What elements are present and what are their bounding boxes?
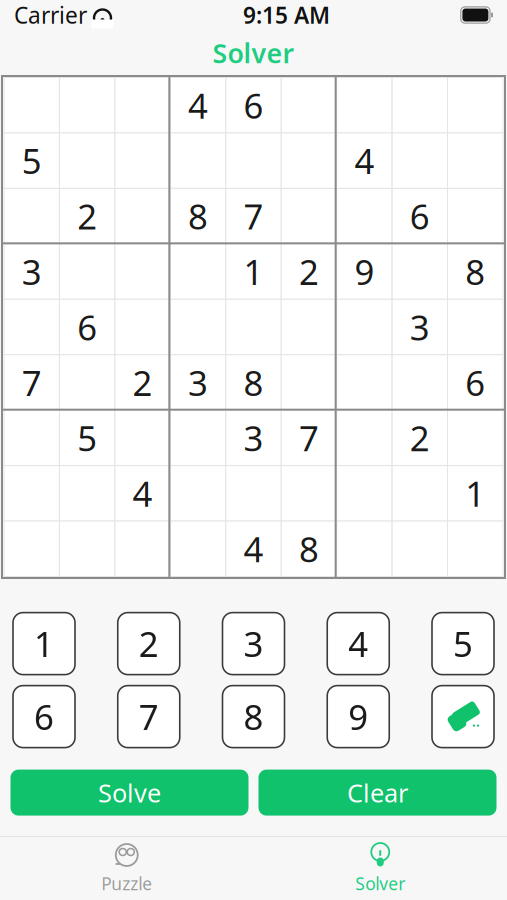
button[interactable]: Empty cell row 7 column 9 xyxy=(448,410,503,466)
button[interactable]: Empty cell row 2 column 3 xyxy=(115,133,170,188)
button[interactable]: Cell row 4 column 5, value 1 xyxy=(226,244,281,299)
button[interactable]: Empty cell row 1 column 6 xyxy=(281,77,337,133)
button[interactable]: Cell row 6 column 1, value 7 xyxy=(4,355,59,410)
button[interactable]: Empty cell row 8 column 2 xyxy=(59,466,115,521)
button[interactable]: Empty cell row 2 column 4 xyxy=(170,133,226,188)
button[interactable]: Empty cell row 8 column 4 xyxy=(170,466,226,521)
button[interactable]: Cell row 4 column 6, value 2 xyxy=(281,244,337,299)
button[interactable]: 5 xyxy=(432,613,494,675)
staticText: 3 xyxy=(410,304,430,350)
button[interactable]: Empty cell row 4 column 8 xyxy=(392,244,447,299)
button[interactable]: Empty cell row 9 column 8 xyxy=(392,521,447,576)
button[interactable]: Empty cell row 7 column 7 xyxy=(337,410,392,466)
button[interactable]: Solver xyxy=(253,837,507,900)
button[interactable]: Cell row 6 column 9, value 6 xyxy=(448,355,503,410)
button[interactable]: Cell row 7 column 6, value 7 xyxy=(281,410,337,466)
button[interactable]: 4 xyxy=(327,613,389,675)
button[interactable]: Cell row 8 column 9, value 1 xyxy=(448,466,503,521)
button[interactable]: Cell row 8 column 3, value 4 xyxy=(115,466,170,521)
button[interactable]: Empty cell row 5 column 7 xyxy=(337,299,392,355)
staticText: 4 xyxy=(348,621,368,667)
button[interactable]: Cell row 1 column 5, value 6 xyxy=(226,77,281,133)
button[interactable]: Cell row 3 column 4, value 8 xyxy=(170,188,226,244)
button[interactable]: Cell row 6 column 5, value 8 xyxy=(226,355,281,410)
button[interactable]: Cell row 6 column 3, value 2 xyxy=(115,355,170,410)
button[interactable]: Cell row 9 column 5, value 4 xyxy=(226,521,281,576)
button[interactable]: Solve xyxy=(10,770,248,816)
button[interactable]: Cell row 3 column 5, value 7 xyxy=(226,188,281,244)
button[interactable]: Cell row 4 column 7, value 9 xyxy=(337,244,392,299)
button[interactable]: Empty cell row 5 column 1 xyxy=(4,299,59,355)
button[interactable]: Empty cell row 3 column 7 xyxy=(337,188,392,244)
button[interactable]: Empty cell row 5 column 6 xyxy=(281,299,337,355)
button[interactable]: Cell row 3 column 2, value 2 xyxy=(59,188,115,244)
button[interactable]: Cell row 7 column 2, value 5 xyxy=(59,410,115,466)
button[interactable]: Empty cell row 8 column 5 xyxy=(226,466,281,521)
button[interactable]: Empty cell row 1 column 7 xyxy=(337,77,392,133)
button[interactable]: Empty cell row 2 column 8 xyxy=(392,133,447,188)
button[interactable]: 6 xyxy=(13,686,75,748)
button[interactable]: Empty cell row 6 column 7 xyxy=(337,355,392,410)
button[interactable]: Empty cell row 6 column 2 xyxy=(59,355,115,410)
button[interactable]: Empty cell row 2 column 2 xyxy=(59,133,115,188)
button[interactable]: 8 xyxy=(222,686,284,748)
button[interactable]: Empty cell row 5 column 3 xyxy=(115,299,170,355)
button[interactable]: 9 xyxy=(327,686,389,748)
button[interactable]: Empty cell row 9 column 7 xyxy=(337,521,392,576)
button[interactable]: 7 xyxy=(118,686,180,748)
button[interactable]: Empty cell row 3 column 1 xyxy=(4,188,59,244)
button[interactable]: Empty cell row 7 column 1 xyxy=(4,410,59,466)
button[interactable]: Empty cell row 1 column 9 xyxy=(448,77,503,133)
button[interactable]: Empty cell row 5 column 9 xyxy=(448,299,503,355)
button[interactable]: Empty cell row 6 column 8 xyxy=(392,355,447,410)
button[interactable]: Empty cell row 1 column 8 xyxy=(392,77,447,133)
button[interactable]: Cell row 9 column 6, value 8 xyxy=(281,521,337,576)
button[interactable]: Cell row 2 column 1, value 5 xyxy=(4,133,59,188)
button[interactable]: Empty cell row 8 column 8 xyxy=(392,466,447,521)
button[interactable]: Erase xyxy=(432,686,494,748)
button[interactable]: Empty cell row 4 column 3 xyxy=(115,244,170,299)
button[interactable]: Cell row 1 column 4, value 4 xyxy=(170,77,226,133)
button[interactable]: Empty cell row 1 column 3 xyxy=(115,77,170,133)
button[interactable]: Cell row 3 column 8, value 6 xyxy=(392,188,447,244)
button[interactable]: Empty cell row 9 column 2 xyxy=(59,521,115,576)
button[interactable]: Cell row 5 column 8, value 3 xyxy=(392,299,447,355)
button[interactable]: Cell row 4 column 1, value 3 xyxy=(4,244,59,299)
button[interactable]: Puzzle xyxy=(0,837,253,900)
button[interactable]: Empty cell row 3 column 6 xyxy=(281,188,337,244)
button[interactable]: Empty cell row 1 column 2 xyxy=(59,77,115,133)
button[interactable]: Empty cell row 7 column 4 xyxy=(170,410,226,466)
button[interactable]: Empty cell row 2 column 6 xyxy=(281,133,337,188)
button[interactable]: Cell row 5 column 2, value 6 xyxy=(59,299,115,355)
button[interactable]: Empty cell row 4 column 2 xyxy=(59,244,115,299)
button[interactable]: 3 xyxy=(222,613,284,675)
button[interactable]: Empty cell row 7 column 3 xyxy=(115,410,170,466)
button[interactable]: Empty cell row 3 column 3 xyxy=(115,188,170,244)
button[interactable]: Empty cell row 4 column 4 xyxy=(170,244,226,299)
button[interactable]: Empty cell row 3 column 9 xyxy=(448,188,503,244)
button[interactable]: 2 xyxy=(118,613,180,675)
button[interactable]: Clear xyxy=(258,770,496,816)
button[interactable]: Empty cell row 1 column 1 xyxy=(4,77,59,133)
button[interactable]: 1 xyxy=(13,613,75,675)
button[interactable]: Cell row 7 column 8, value 2 xyxy=(392,410,447,466)
button[interactable]: Empty cell row 5 column 4 xyxy=(170,299,226,355)
button[interactable]: Empty cell row 9 column 4 xyxy=(170,521,226,576)
button[interactable]: Cell row 4 column 9, value 8 xyxy=(448,244,503,299)
staticText: 5 xyxy=(453,621,473,667)
staticText: 7 xyxy=(139,694,159,740)
button[interactable]: Empty cell row 9 column 3 xyxy=(115,521,170,576)
button[interactable]: Cell row 7 column 5, value 3 xyxy=(226,410,281,466)
staticText: 3 xyxy=(243,621,263,667)
button[interactable]: Cell row 6 column 4, value 3 xyxy=(170,355,226,410)
button[interactable]: Empty cell row 5 column 5 xyxy=(226,299,281,355)
button[interactable]: Empty cell row 8 column 1 xyxy=(4,466,59,521)
button[interactable]: Empty cell row 8 column 6 xyxy=(281,466,337,521)
button[interactable]: Empty cell row 8 column 7 xyxy=(337,466,392,521)
button[interactable]: Empty cell row 6 column 6 xyxy=(281,355,337,410)
button[interactable]: Cell row 2 column 7, value 4 xyxy=(337,133,392,188)
